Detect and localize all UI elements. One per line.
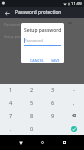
button[interactable]: Back bbox=[13, 135, 29, 150]
staticText: Setup password bbox=[24, 27, 62, 34]
staticText: 8 bbox=[30, 112, 34, 120]
button[interactable]: 9 bbox=[42, 109, 63, 122]
button[interactable]: - bbox=[63, 84, 84, 96]
button[interactable]: Home bbox=[34, 135, 50, 150]
button[interactable]: , bbox=[63, 96, 84, 109]
button[interactable]: 4 bbox=[0, 96, 21, 109]
button[interactable]: 6 bbox=[42, 96, 63, 109]
button[interactable]: 1 bbox=[0, 84, 21, 96]
button[interactable]: Recents bbox=[56, 135, 72, 150]
staticText: 4 bbox=[9, 99, 13, 107]
button[interactable]: 3 bbox=[42, 84, 63, 96]
staticText: CANCEL bbox=[30, 58, 44, 63]
button[interactable]: CANCEL bbox=[29, 57, 45, 63]
staticText: Password bbox=[24, 38, 43, 44]
staticText: , bbox=[73, 99, 75, 107]
staticText: 2 bbox=[30, 86, 34, 94]
staticText: Password protection bbox=[15, 9, 62, 16]
button[interactable]: 2 bbox=[21, 84, 42, 96]
staticText: . bbox=[10, 125, 12, 133]
button[interactable]: . bbox=[0, 122, 21, 135]
staticText: Password bbox=[4, 22, 21, 27]
staticText: 1 bbox=[9, 86, 13, 94]
button[interactable]: Backspace bbox=[63, 109, 84, 122]
staticText: SAVE bbox=[51, 58, 60, 63]
other: Backspace bbox=[72, 114, 76, 117]
staticText: Setup password bbox=[4, 34, 31, 39]
staticText: 3 bbox=[51, 86, 55, 94]
staticText: 11:09 bbox=[71, 1, 82, 7]
button[interactable]: 7 bbox=[0, 109, 21, 122]
button[interactable]: 5 bbox=[21, 96, 42, 109]
staticText: 9 bbox=[51, 112, 55, 120]
button[interactable]: 8 bbox=[21, 109, 42, 122]
other: Done bbox=[71, 126, 77, 132]
button[interactable]: Back bbox=[2, 8, 12, 18]
staticText: 7 bbox=[9, 112, 13, 120]
button[interactable]: Done bbox=[63, 122, 84, 135]
staticText: 0 bbox=[30, 125, 34, 133]
button[interactable]: 0 bbox=[21, 122, 42, 135]
button[interactable]: SAVE bbox=[50, 57, 61, 63]
staticText: 6 bbox=[51, 99, 55, 107]
staticText: 5 bbox=[30, 99, 34, 107]
staticText: - bbox=[73, 86, 75, 94]
